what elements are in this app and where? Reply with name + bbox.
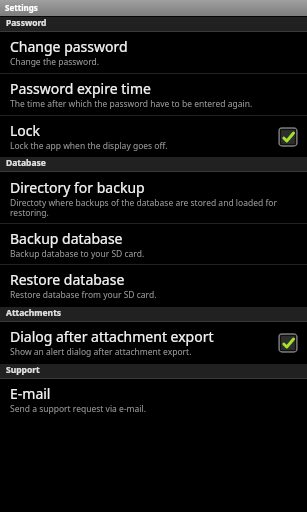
button[interactable]: Restore database [0,265,307,307]
staticText: Change the password. [10,56,100,68]
staticText: Directoty where backups of the database … [10,197,279,218]
staticText: Password expire time [10,79,151,98]
staticText: Restore database [10,270,125,289]
button[interactable]: Directory for backup [0,172,307,224]
staticText: Restore database from your SD card. [10,289,157,301]
staticText: Attachments [6,307,62,319]
staticText: Lock the app when the display goes off. [10,140,168,152]
staticText: Send a support request via e-mail. [10,403,147,415]
button[interactable]: E-mail [0,379,307,421]
button[interactable]: Lock [278,127,298,147]
staticText: E-mail [10,384,51,403]
staticText: Backup database to your SD card. [10,248,145,260]
staticText: Support [6,364,40,376]
button[interactable]: Password expire time [0,74,307,116]
staticText: Password [6,17,47,29]
staticText: Directory for backup [10,178,145,197]
button[interactable]: Backup database [0,224,307,265]
button[interactable]: Dialog after attachment export [0,322,307,364]
button[interactable]: Change password [0,32,307,74]
staticText: Change password [10,37,128,56]
button[interactable]: Dialog after attachment export [278,333,298,353]
button[interactable]: Lock [0,116,307,157]
staticText: Database [6,157,46,169]
staticText: Show an alert dialog after attachment ex… [10,346,192,358]
staticText: Lock [10,121,41,140]
staticText: Backup database [10,229,123,248]
staticText: Settings [5,2,38,13]
staticText: The time after which the password have t… [10,98,253,110]
staticText: Dialog after attachment export [10,327,214,346]
